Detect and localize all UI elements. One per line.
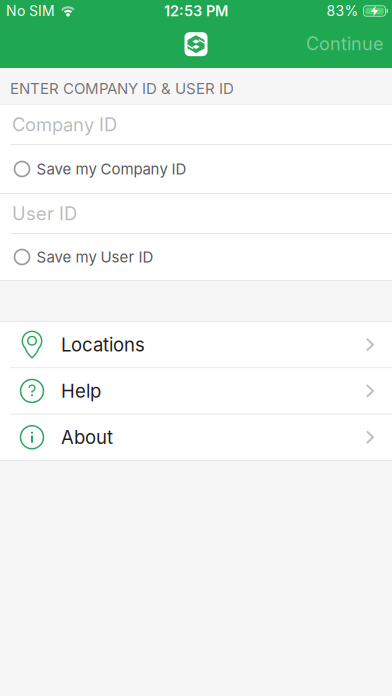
button[interactable]: Save my User ID [0, 234, 392, 280]
staticText: User ID [12, 202, 77, 224]
staticText: About [61, 426, 113, 448]
button[interactable]: User ID [0, 194, 392, 233]
button[interactable]: Help [0, 368, 392, 414]
staticText: Continue [306, 33, 383, 55]
staticText: Help [61, 380, 101, 402]
staticText: Save my User ID [36, 248, 153, 266]
staticText: Locations [61, 333, 145, 356]
button[interactable]: Save my Company ID [0, 145, 392, 193]
button[interactable]: Company ID [0, 105, 392, 144]
staticText: Save my Company ID [36, 160, 186, 178]
staticText: No SIM [6, 2, 55, 19]
button[interactable]: About [0, 415, 392, 460]
staticText: 83% [326, 2, 358, 19]
button[interactable]: Locations [0, 322, 392, 367]
staticText: ENTER COMPANY ID & USER ID [10, 79, 234, 97]
staticText: Company ID [12, 113, 117, 135]
staticText: 12:53 PM [164, 2, 228, 20]
button[interactable]: Continue [306, 34, 392, 56]
